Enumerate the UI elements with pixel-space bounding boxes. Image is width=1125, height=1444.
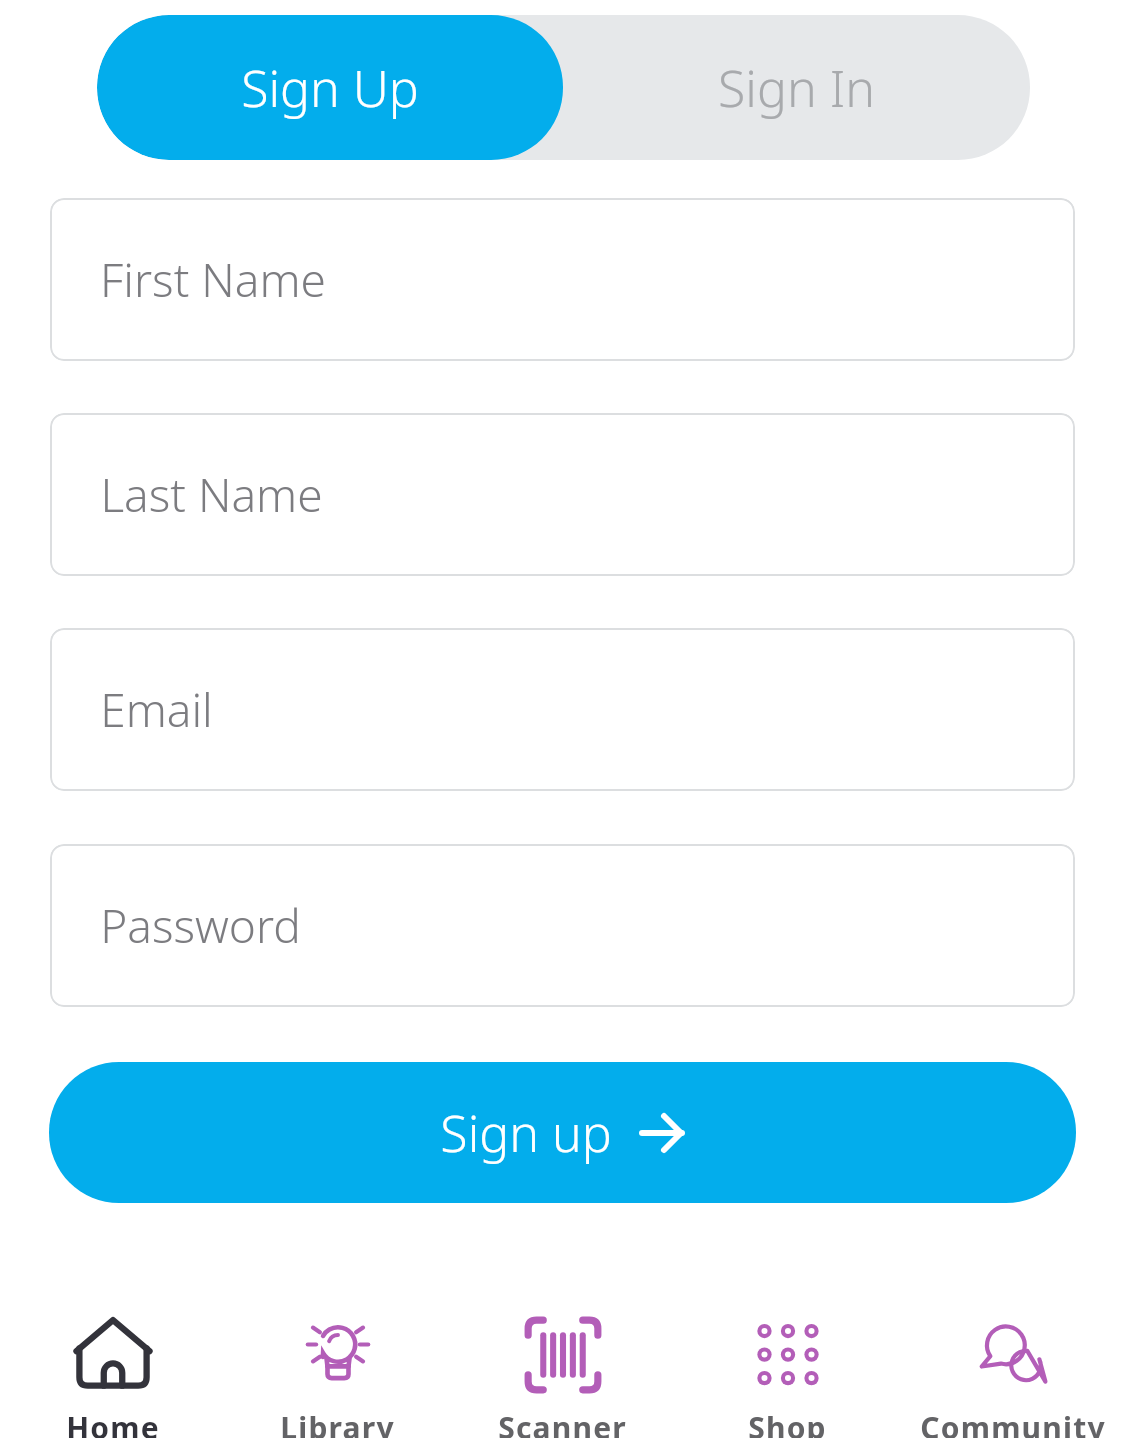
staticText: Sign In: [718, 54, 875, 122]
button[interactable]: First Name: [50, 198, 1075, 361]
button[interactable]: Shop: [675, 1308, 900, 1438]
staticText: Email: [100, 678, 213, 741]
staticText: Shop: [748, 1407, 827, 1438]
button[interactable]: Library: [225, 1308, 450, 1438]
staticText: Sign up: [440, 1099, 612, 1167]
staticText: Sign Up: [241, 54, 419, 122]
staticText: Last Name: [100, 463, 323, 526]
button[interactable]: Scanner: [450, 1308, 675, 1438]
staticText: Scanner: [498, 1407, 627, 1438]
button[interactable]: Sign up: [49, 1062, 1076, 1203]
staticText: Home: [66, 1407, 160, 1438]
staticText: Library: [280, 1407, 395, 1438]
button[interactable]: Last Name: [50, 413, 1075, 576]
button[interactable]: Sign Up: [97, 15, 563, 160]
button[interactable]: Email: [50, 628, 1075, 791]
button[interactable]: Home: [0, 1308, 225, 1438]
button[interactable]: Community: [900, 1308, 1125, 1438]
button[interactable]: Password: [50, 844, 1075, 1007]
staticText: Community: [920, 1407, 1106, 1438]
button[interactable]: Sign In: [563, 15, 1030, 160]
staticText: Password: [100, 894, 301, 957]
staticText: First Name: [100, 248, 326, 311]
